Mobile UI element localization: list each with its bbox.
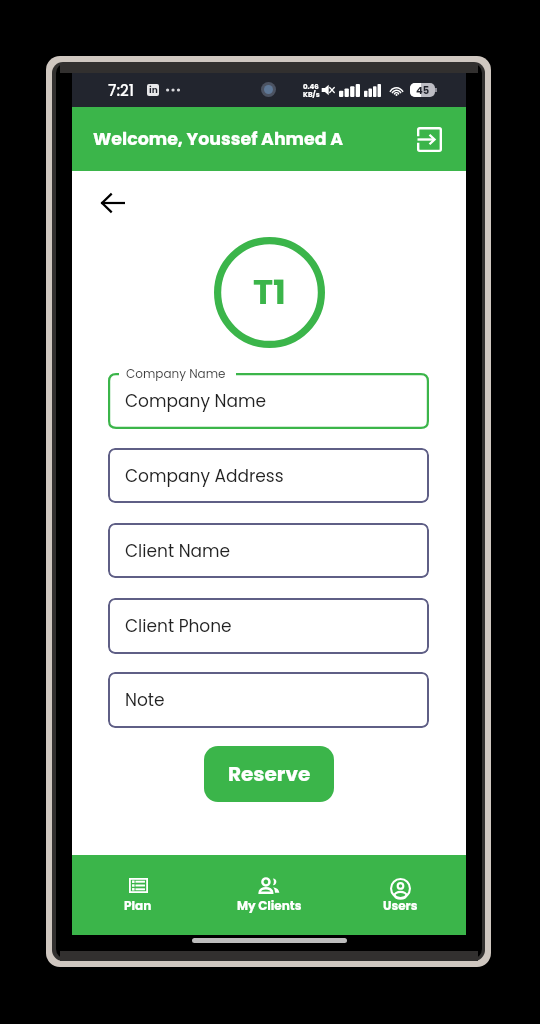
button[interactable]: Users <box>335 855 466 935</box>
staticText: 0.46 KB/s <box>303 82 320 99</box>
button[interactable]: Client Phone <box>108 598 429 654</box>
staticText: Company Name <box>125 389 266 413</box>
staticText: Client Name <box>125 539 231 563</box>
staticText: Welcome, Youssef Ahmed A <box>93 127 344 151</box>
staticText: My Clients <box>237 897 302 914</box>
staticText: Note <box>125 688 165 712</box>
staticText: Users <box>383 897 418 914</box>
button[interactable]: Client Name <box>108 523 429 578</box>
button[interactable]: Note <box>108 672 429 728</box>
staticText: Client Phone <box>125 614 232 638</box>
button[interactable]: My Clients <box>204 855 335 935</box>
staticText: Plan <box>124 897 152 914</box>
button[interactable]: Logout <box>410 120 448 158</box>
staticText: Company Name <box>126 365 226 382</box>
button[interactable]: Reserve <box>204 746 334 802</box>
button[interactable]: Plan <box>72 855 204 935</box>
staticText: 7:21 <box>108 80 134 101</box>
staticText: T1 <box>253 268 286 316</box>
staticText: Company Address <box>125 464 284 488</box>
staticText: Reserve <box>228 760 311 788</box>
staticText: in <box>149 84 158 96</box>
staticText: 45 <box>416 83 430 97</box>
button[interactable]: Company Address <box>108 448 429 503</box>
button[interactable]: Company Name <box>108 373 429 429</box>
button[interactable]: Back <box>91 181 135 225</box>
